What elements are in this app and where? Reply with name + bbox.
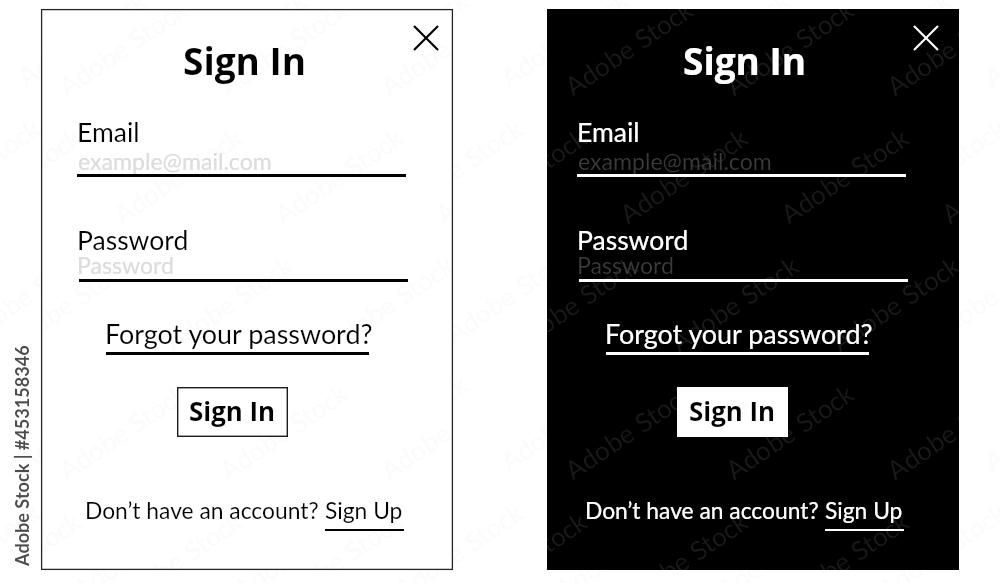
staticText: Password bbox=[77, 251, 174, 279]
staticText: Email bbox=[77, 116, 140, 148]
staticText: Sign Up bbox=[825, 496, 903, 523]
staticText: Forgot your password? bbox=[605, 317, 873, 349]
staticText: Password bbox=[77, 224, 189, 256]
button[interactable]: Forgot your password? bbox=[606, 313, 891, 363]
staticText: Sign In bbox=[189, 393, 276, 428]
staticText: Don’t have an account? bbox=[85, 496, 325, 523]
button[interactable]: Sign In bbox=[177, 387, 288, 437]
staticText: Sign Up bbox=[325, 496, 403, 523]
button[interactable]: Sign Up bbox=[825, 496, 904, 523]
staticText: Email bbox=[577, 116, 640, 148]
staticText: Password bbox=[577, 251, 674, 279]
button[interactable]: Forgot your password? bbox=[106, 313, 391, 363]
staticText: Sign In bbox=[183, 35, 307, 85]
button[interactable]: Close bbox=[904, 16, 948, 60]
staticText: Adobe Stock | #453158346 bbox=[11, 345, 33, 566]
button[interactable]: Sign Up bbox=[325, 496, 404, 523]
staticText: example@mail.com bbox=[78, 147, 272, 175]
staticText: Password bbox=[577, 224, 689, 256]
staticText: Don’t have an account? bbox=[585, 496, 825, 523]
staticText: example@mail.com bbox=[578, 147, 772, 175]
button[interactable]: Close bbox=[404, 16, 448, 60]
staticText: Sign In bbox=[689, 393, 776, 428]
staticText: Sign In bbox=[683, 35, 807, 85]
button[interactable]: Sign In bbox=[677, 387, 788, 437]
staticText: Forgot your password? bbox=[105, 317, 373, 349]
